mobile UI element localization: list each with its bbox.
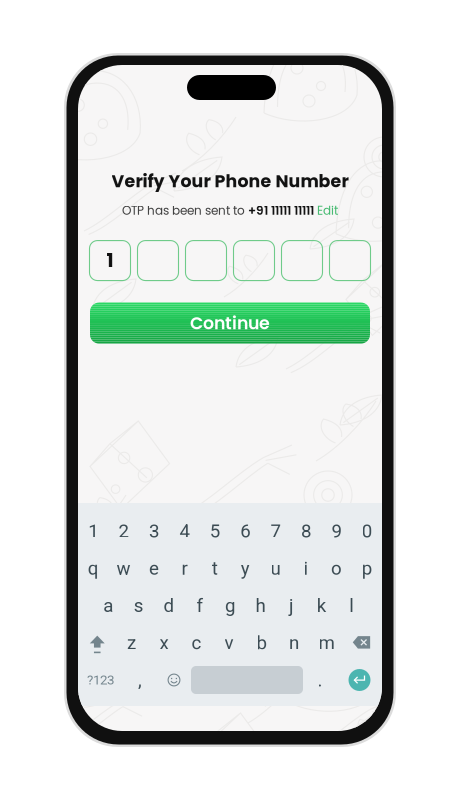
staticText: 8 (301, 520, 311, 542)
staticText: b (256, 632, 266, 654)
staticText: z (127, 632, 136, 654)
staticText: ?123 (87, 672, 114, 688)
button[interactable]: w (108, 550, 139, 587)
staticText: o (331, 557, 342, 579)
button[interactable]: OTP digit (233, 241, 274, 281)
button[interactable]: p (352, 550, 382, 587)
staticText: 1 (106, 247, 113, 274)
button[interactable]: q (78, 550, 108, 587)
button[interactable]: 7 (260, 512, 291, 550)
button[interactable]: f (184, 587, 215, 624)
button[interactable]: OTP digit (281, 241, 322, 281)
button[interactable]: 5 (200, 512, 230, 550)
staticText: f (197, 595, 203, 616)
button[interactable]: t (200, 550, 230, 587)
staticText: +91 11111 11111 (248, 202, 314, 219)
staticText: 9 (331, 520, 341, 542)
staticText: , (138, 669, 142, 691)
button[interactable]: d (154, 587, 184, 624)
button[interactable]: OTP digit (185, 241, 226, 281)
button[interactable]: v (213, 624, 245, 661)
staticText: 5 (210, 520, 220, 542)
staticText: c (191, 632, 201, 654)
button[interactable]: ?123 (78, 661, 123, 699)
button[interactable]: 4 (169, 512, 200, 550)
staticText: s (134, 595, 144, 616)
staticText: v (224, 632, 233, 654)
button[interactable]: m (310, 624, 343, 661)
button[interactable]: j (276, 587, 306, 624)
button[interactable]: s (123, 587, 154, 624)
button[interactable]: o (321, 550, 352, 587)
staticText: u (271, 557, 281, 579)
staticText: r (181, 557, 187, 579)
staticText: 3 (149, 520, 159, 542)
staticText: Continue (190, 311, 270, 335)
staticText: j (289, 595, 293, 616)
staticText: d (164, 595, 175, 616)
button[interactable]: Emoji (157, 661, 191, 699)
button[interactable]: OTP digit (137, 241, 178, 281)
staticText: g (225, 595, 235, 616)
button[interactable]: Backspace (343, 624, 381, 661)
button[interactable]: k (306, 587, 336, 624)
staticText: n (289, 632, 299, 654)
button[interactable]: z (115, 624, 148, 661)
button[interactable]: Edit (314, 202, 338, 219)
staticText: x (159, 632, 168, 654)
staticText: OTP has been sent to (122, 202, 248, 219)
button[interactable]: 8 (291, 512, 321, 550)
button[interactable]: a (93, 587, 123, 624)
button[interactable]: b (245, 624, 278, 661)
button[interactable]: i (291, 550, 321, 587)
button[interactable]: g (215, 587, 245, 624)
staticText: 2 (119, 520, 129, 542)
staticText: p (362, 557, 372, 579)
button[interactable]: OTP digit (89, 241, 130, 281)
button[interactable]: Enter (337, 661, 382, 699)
staticText: h (255, 595, 265, 616)
staticText: Edit (314, 202, 338, 219)
button[interactable]: h (245, 587, 276, 624)
button[interactable]: OTP digit (329, 241, 370, 281)
staticText: m (318, 632, 334, 654)
staticText: k (317, 595, 326, 616)
button[interactable]: 0 (352, 512, 382, 550)
staticText: Verify Your Phone Number (111, 169, 348, 193)
button[interactable]: l (337, 587, 367, 624)
staticText: 6 (240, 520, 250, 542)
button[interactable]: c (180, 624, 213, 661)
staticText: 4 (179, 520, 189, 542)
button[interactable]: e (139, 550, 169, 587)
button[interactable]: 2 (108, 512, 139, 550)
button[interactable]: 6 (230, 512, 260, 550)
staticText: 0 (362, 520, 372, 542)
staticText: a (103, 595, 113, 616)
staticText: q (88, 557, 99, 579)
staticText: e (149, 557, 159, 579)
button[interactable]: Continue (90, 303, 370, 344)
button[interactable]: u (260, 550, 291, 587)
button[interactable]: r (169, 550, 200, 587)
staticText: . (317, 669, 322, 691)
button[interactable]: 1 (78, 512, 108, 550)
staticText: y (241, 557, 250, 579)
staticText: 1 (88, 520, 98, 542)
staticText: l (349, 595, 354, 616)
staticText: i (303, 557, 308, 579)
staticText: t (212, 557, 218, 579)
button[interactable]: n (278, 624, 310, 661)
button[interactable]: , (123, 661, 157, 699)
button[interactable]: 3 (139, 512, 169, 550)
button[interactable]: x (148, 624, 180, 661)
staticText: 7 (271, 520, 281, 542)
button[interactable]: Shift (79, 624, 115, 661)
button[interactable]: Space (191, 661, 303, 699)
button[interactable]: y (230, 550, 260, 587)
staticText: w (117, 557, 131, 579)
button[interactable]: 9 (321, 512, 352, 550)
button[interactable]: . (303, 661, 337, 699)
